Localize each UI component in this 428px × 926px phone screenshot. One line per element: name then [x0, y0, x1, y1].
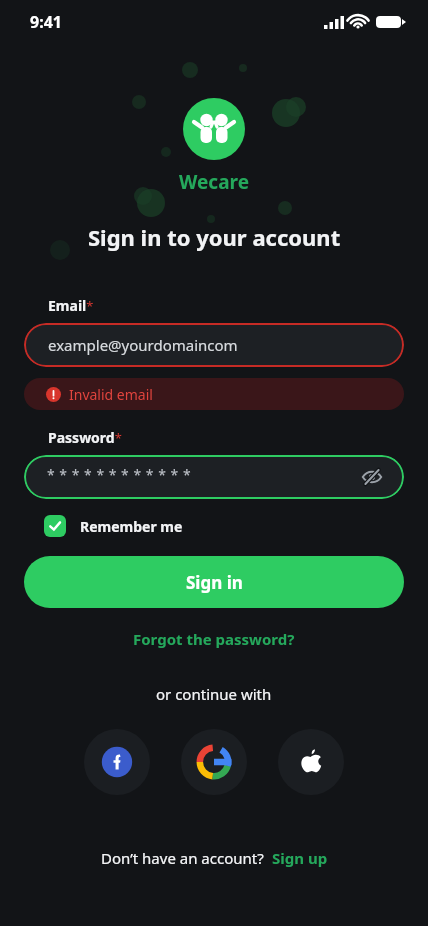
staticText: * * * * * * * * * * * *: [47, 465, 192, 484]
button[interactable]: Sign in with Apple: [278, 729, 344, 795]
staticText: Sign in: [186, 571, 243, 594]
button[interactable]: * * * * * * * * * * * *: [24, 455, 404, 499]
staticText: or continue with: [156, 684, 272, 704]
staticText: Remember me: [80, 517, 183, 536]
staticText: example@yourdomaincom: [48, 335, 238, 355]
button[interactable]: Show password: [358, 463, 386, 491]
staticText: Password*: [48, 428, 122, 447]
button[interactable]: Sign in with Google: [181, 729, 247, 795]
staticText: Sign in to your account: [88, 222, 341, 252]
staticText: Wecare: [179, 169, 249, 195]
staticText: Don’t have an account?: [101, 848, 264, 868]
staticText: 9:41: [30, 11, 62, 33]
staticText: Email*: [48, 296, 94, 315]
button[interactable]: example@yourdomaincom: [24, 323, 404, 367]
button[interactable]: Sign in with Facebook: [84, 729, 150, 795]
staticText: Invalid email: [69, 385, 153, 404]
button[interactable]: Remember me: [44, 515, 428, 537]
button[interactable]: Sign in: [24, 556, 404, 608]
button[interactable]: Sign up: [272, 848, 328, 868]
button[interactable]: Forgot the password?: [133, 629, 295, 649]
